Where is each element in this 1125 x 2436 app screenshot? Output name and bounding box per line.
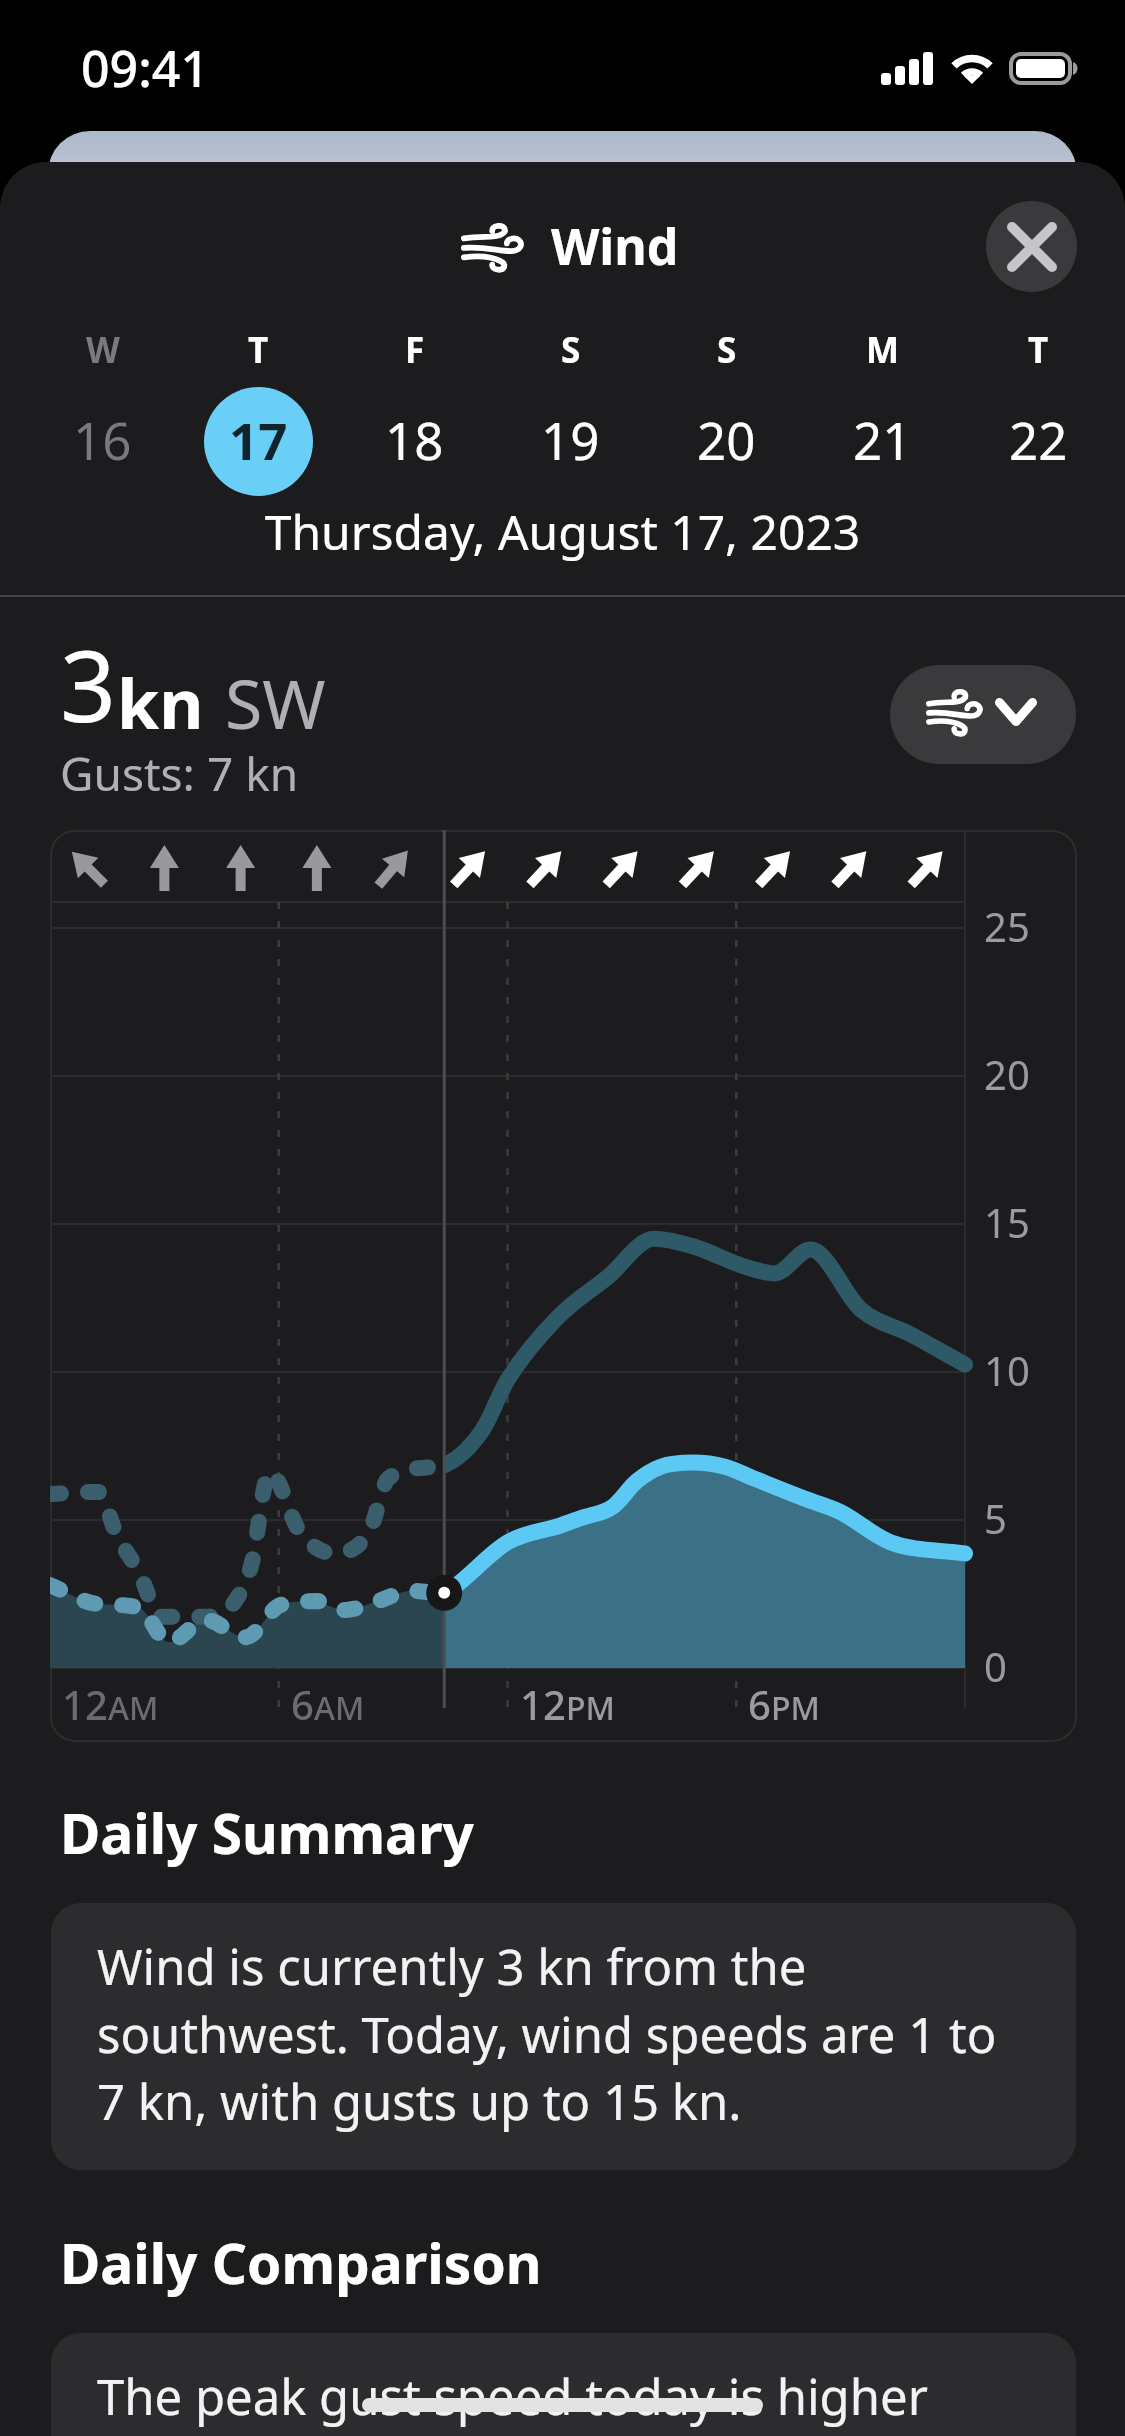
staticText: 09:41 bbox=[81, 34, 209, 102]
button[interactable]: T bbox=[180, 330, 336, 510]
button[interactable]: Select metric bbox=[890, 665, 1076, 764]
staticText: F bbox=[405, 326, 425, 374]
staticText: 15 bbox=[984, 1195, 1030, 1249]
staticText: PM bbox=[771, 1686, 820, 1730]
staticText: S bbox=[717, 326, 737, 374]
button[interactable]: Wind is currently 3 kn from the southwes… bbox=[51, 1903, 1076, 2170]
button[interactable]: T bbox=[960, 330, 1116, 510]
button[interactable]: W bbox=[25, 330, 180, 510]
button[interactable]: Close bbox=[986, 201, 1077, 292]
staticText: 18 bbox=[385, 405, 444, 474]
staticText: AM bbox=[314, 1686, 365, 1730]
staticText: 25 bbox=[984, 899, 1030, 953]
staticText: 16 bbox=[73, 405, 132, 474]
staticText: Wind is currently 3 kn from the southwes… bbox=[97, 1933, 1037, 2134]
staticText: 19 bbox=[541, 405, 600, 474]
staticText: 12 bbox=[520, 1677, 566, 1731]
staticText: 21 bbox=[853, 405, 912, 474]
staticText: kn bbox=[117, 656, 204, 749]
staticText: 20 bbox=[697, 405, 756, 474]
staticText: 12 bbox=[62, 1677, 108, 1731]
button[interactable]: M bbox=[804, 330, 960, 510]
staticText: AM bbox=[108, 1686, 159, 1730]
staticText: S bbox=[561, 326, 581, 374]
staticText: Wind bbox=[551, 212, 679, 280]
staticText: The peak gust speed today is higher than… bbox=[97, 2363, 1037, 2436]
button[interactable]: The peak gust speed today is higher than… bbox=[51, 2333, 1076, 2436]
staticText: W bbox=[86, 326, 120, 374]
button[interactable]: S bbox=[648, 330, 804, 510]
staticText: Daily Summary bbox=[60, 1795, 474, 1870]
staticText: Daily Comparison bbox=[60, 2225, 542, 2300]
staticText: 22 bbox=[1009, 405, 1068, 474]
staticText: Gusts: 7 kn bbox=[60, 742, 299, 805]
staticText: 6 bbox=[291, 1677, 314, 1731]
button[interactable]: S bbox=[492, 330, 648, 510]
staticText: 5 bbox=[984, 1491, 1007, 1545]
staticText: T bbox=[248, 326, 269, 374]
staticText: 10 bbox=[984, 1343, 1030, 1397]
staticText: T bbox=[1028, 326, 1049, 374]
staticText: 17 bbox=[229, 405, 288, 474]
staticText: 6 bbox=[748, 1677, 771, 1731]
staticText: 3 bbox=[60, 617, 117, 750]
button[interactable]: F bbox=[336, 330, 492, 510]
staticText: 0 bbox=[984, 1639, 1007, 1693]
staticText: Thursday, August 17, 2023 bbox=[0, 499, 1125, 564]
staticText: 20 bbox=[984, 1047, 1030, 1101]
staticText: SW bbox=[225, 656, 326, 749]
staticText: PM bbox=[566, 1686, 615, 1730]
staticText: M bbox=[866, 326, 900, 374]
